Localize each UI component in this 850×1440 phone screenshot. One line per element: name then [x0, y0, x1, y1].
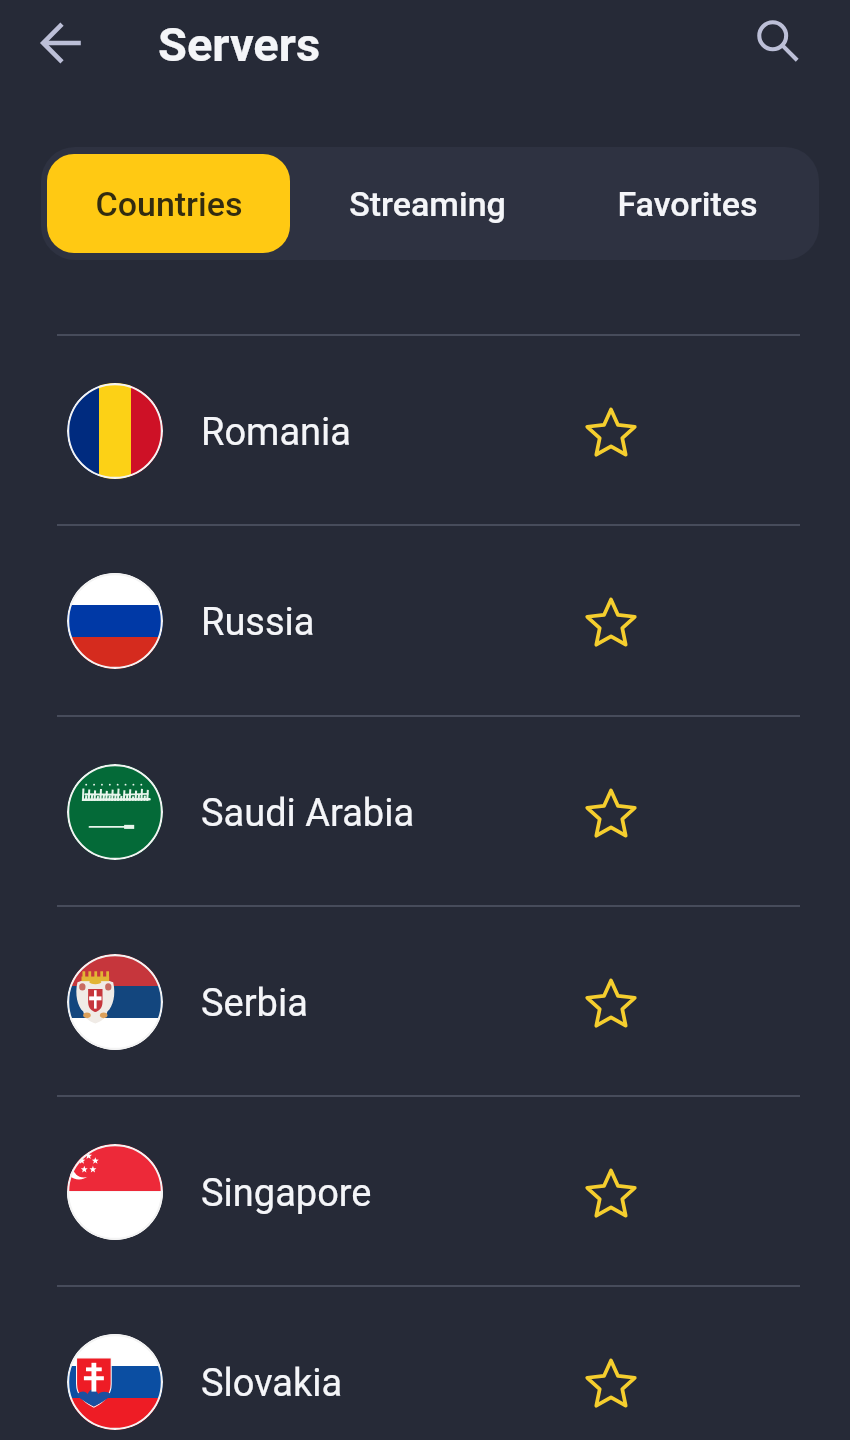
button[interactable]: Back: [30, 11, 94, 75]
button[interactable]: Favorite Romania: [541, 373, 681, 493]
button[interactable]: Slovakia: [0, 1285, 850, 1440]
button[interactable]: Search: [746, 10, 810, 74]
staticText: Russia: [201, 600, 315, 645]
button[interactable]: Romania: [0, 334, 850, 524]
staticText: Slovakia: [201, 1361, 343, 1406]
staticText: Romania: [201, 410, 351, 455]
button[interactable]: Singapore: [0, 1095, 850, 1285]
staticText: Favorites: [617, 184, 758, 224]
button[interactable]: Favorite Russia: [541, 563, 681, 683]
button[interactable]: Favorite Saudi Arabia: [541, 754, 681, 874]
button[interactable]: Serbia: [0, 905, 850, 1095]
button[interactable]: Russia: [0, 524, 850, 714]
staticText: Serbia: [201, 981, 308, 1026]
staticText: Singapore: [201, 1171, 372, 1216]
staticText: Saudi Arabia: [201, 791, 415, 836]
button[interactable]: Favorite Singapore: [541, 1134, 681, 1254]
button[interactable]: Favorites: [560, 154, 814, 253]
staticText: Servers: [158, 17, 321, 72]
button[interactable]: Countries: [47, 154, 290, 253]
staticText: Countries: [95, 184, 243, 224]
button[interactable]: Saudi Arabia: [0, 715, 850, 905]
button[interactable]: Favorite Serbia: [541, 944, 681, 1064]
staticText: Streaming: [349, 184, 506, 224]
button[interactable]: Streaming: [290, 154, 565, 253]
button[interactable]: Favorite Slovakia: [541, 1324, 681, 1440]
